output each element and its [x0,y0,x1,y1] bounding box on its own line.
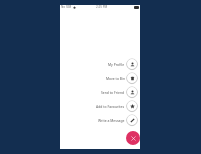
button[interactable]: Write a Message [60,113,140,127]
staticText: Move to Bin [106,76,125,81]
button[interactable]: Close actions [126,131,140,145]
staticText: 2:25 PM [96,5,108,9]
staticText: My Profile [108,62,125,67]
button[interactable]: Move to Bin [60,71,140,85]
staticText: No SIM [61,5,72,9]
staticText: Add to Favourites [96,104,125,109]
staticText: Send to Friend [101,90,125,95]
button[interactable]: My Profile [60,57,140,71]
button[interactable]: Add to Favourites [60,99,140,113]
button[interactable]: Send to Friend [60,85,140,99]
staticText: Write a Message [98,118,125,123]
